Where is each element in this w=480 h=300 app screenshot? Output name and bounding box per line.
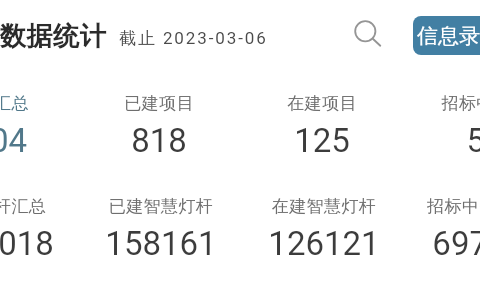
staticText: 招标中智慧灯杆 (358, 196, 480, 218)
staticText: 126121 (194, 224, 454, 266)
button[interactable]: Search (348, 13, 384, 49)
staticText: 信息录入 (417, 23, 480, 49)
staticText: 截止 2023-03-06 (119, 28, 268, 49)
staticText: 已建智慧灯杆 (31, 196, 291, 218)
button[interactable]: 已建智慧灯杆 (80, 190, 242, 258)
staticText: 57 (355, 121, 480, 163)
staticText: 158161 (31, 224, 291, 266)
staticText: 数据统计 (0, 20, 107, 53)
button[interactable]: 在建智慧灯杆 (243, 190, 405, 258)
button[interactable]: 已建项目 (78, 87, 240, 155)
staticText: 招标中项目 (355, 93, 480, 115)
staticText: 在建项目 (192, 93, 452, 115)
button[interactable]: 智慧灯杆汇总 (0, 190, 70, 258)
staticText: 2843018 (0, 224, 119, 266)
button[interactable]: 信息录入 (413, 16, 480, 55)
button[interactable]: 项目汇总 (0, 87, 71, 155)
staticText: 697524 (358, 224, 480, 266)
button[interactable]: 招标中智慧灯杆 (407, 190, 480, 258)
staticText: 818 (29, 121, 289, 163)
staticText: 在建智慧灯杆 (194, 196, 454, 218)
button[interactable]: 招标中项目 (404, 87, 480, 155)
staticText: 项目汇总 (0, 93, 124, 115)
staticText: 智慧灯杆汇总 (0, 196, 124, 218)
staticText: 已建项目 (29, 93, 289, 115)
staticText: 125 (192, 121, 452, 163)
staticText: 1104 (0, 121, 120, 163)
button[interactable]: 在建项目 (241, 87, 403, 155)
